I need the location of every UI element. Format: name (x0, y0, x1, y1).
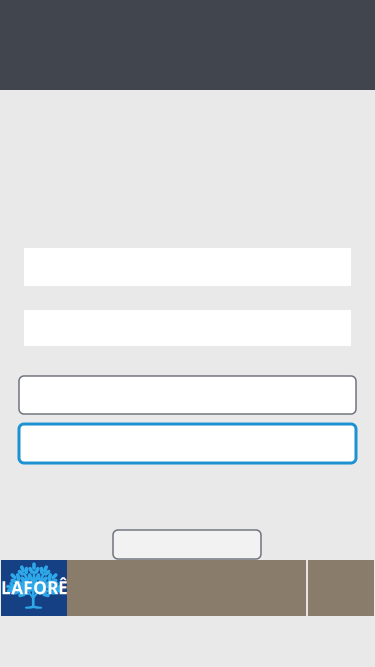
button[interactable]: Submit (113, 530, 261, 559)
button[interactable]: Text field (19, 376, 356, 414)
button[interactable]: Laforêt home (1, 560, 67, 616)
button[interactable]: Selected text field (19, 424, 356, 463)
staticText: LAFORÊT (1, 576, 78, 599)
